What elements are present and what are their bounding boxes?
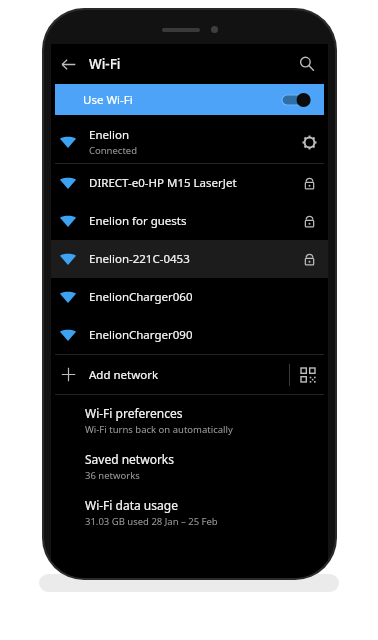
staticText: Enelion for guests [89, 213, 187, 229]
staticText: Enelion [89, 127, 129, 143]
button[interactable]: DIRECT-e0-HP M15 LaserJet [51, 164, 328, 202]
staticText: Wi-Fi [89, 55, 121, 73]
button[interactable]: Enelion-221C-0453 [51, 240, 328, 278]
staticText: 31.03 GB used 28 Jan – 25 Feb [85, 515, 218, 528]
button[interactable]: Search [290, 47, 324, 81]
staticText: Wi-Fi preferences [85, 405, 183, 421]
staticText: Wi-Fi data usage [85, 497, 178, 513]
button[interactable]: Wi-Fi data usage [51, 495, 328, 530]
staticText: Connected [89, 144, 138, 157]
button[interactable]: Scan QR code [290, 357, 326, 393]
staticText: 36 networks [85, 469, 140, 482]
staticText: Wi-Fi turns back on automatically [85, 423, 233, 436]
staticText: Saved networks [85, 451, 175, 467]
button[interactable]: Use Wi-Fi [55, 84, 324, 115]
button[interactable]: Add network [51, 355, 328, 394]
staticText: Add network [89, 367, 159, 383]
button[interactable]: Use Wi-Fi toggle [282, 92, 312, 108]
button[interactable]: Enelion for guests [51, 202, 328, 240]
button[interactable]: Saved networks [51, 449, 328, 484]
staticText: EnelionCharger060 [89, 289, 193, 305]
button[interactable]: Network settings [292, 125, 326, 159]
staticText: EnelionCharger090 [89, 327, 193, 343]
button[interactable]: EnelionCharger090 [51, 316, 328, 354]
staticText: Enelion-221C-0453 [89, 251, 190, 267]
button[interactable]: EnelionCharger060 [51, 278, 328, 316]
button[interactable]: Wi-Fi preferences [51, 403, 328, 438]
staticText: DIRECT-e0-HP M15 LaserJet [89, 175, 237, 191]
button[interactable]: Enelion [51, 121, 328, 163]
staticText: Use Wi-Fi [83, 92, 133, 108]
button[interactable]: Back [51, 47, 85, 81]
